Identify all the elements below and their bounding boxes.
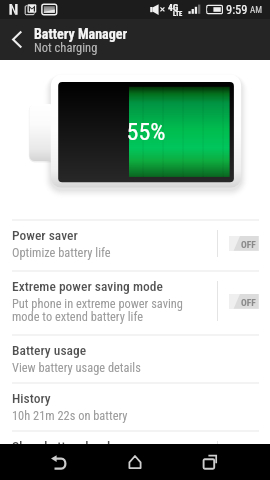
- button[interactable]: Back: [0, 19, 34, 60]
- staticText: Power saver: [12, 227, 78, 243]
- staticText: 9:59: [226, 2, 248, 17]
- staticText: OFF: [241, 297, 256, 308]
- staticText: Show battery level: [12, 438, 111, 454]
- staticText: mode to extend battery life: [12, 309, 144, 324]
- button[interactable]: Home: [117, 444, 153, 480]
- button[interactable]: Extreme power saving mode: [0, 272, 270, 334]
- staticText: Optimize battery life: [12, 245, 111, 260]
- staticText: OFF: [241, 239, 256, 250]
- staticText: Extreme power saving mode: [12, 278, 163, 294]
- button[interactable]: Toggle off: [229, 236, 259, 251]
- button[interactable]: History: [0, 384, 270, 431]
- staticText: LTE: [173, 10, 183, 18]
- button[interactable]: Recent apps: [192, 444, 228, 480]
- staticText: View battery usage details: [12, 360, 141, 375]
- staticText: History: [12, 390, 51, 406]
- staticText: AM: [250, 5, 262, 16]
- button[interactable]: Power saver: [0, 221, 270, 270]
- staticText: Put phone in extreme power saving: [12, 296, 183, 311]
- button[interactable]: Back: [42, 444, 78, 480]
- staticText: Display battery level in status bar: [12, 456, 174, 471]
- staticText: Battery usage: [12, 342, 87, 358]
- staticText: 4G: [168, 2, 179, 13]
- staticText: 10h 21m 22s on battery: [12, 408, 128, 423]
- staticText: 55%: [123, 118, 169, 146]
- staticText: Not charging: [34, 40, 98, 55]
- button[interactable]: Show battery level: [0, 432, 270, 478]
- button[interactable]: Battery usage: [0, 336, 270, 382]
- staticText: Battery Manager: [34, 26, 128, 42]
- button[interactable]: Toggle off: [229, 294, 259, 309]
